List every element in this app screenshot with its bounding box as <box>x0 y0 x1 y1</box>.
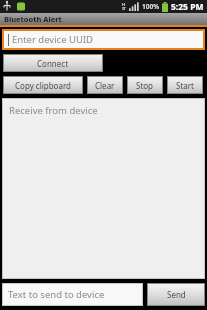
staticText: Bluetooth Alert <box>4 14 62 24</box>
staticText: Receive from device <box>9 104 98 117</box>
staticText: Enter device UUID <box>12 33 94 46</box>
staticText: 3T <box>122 7 126 11</box>
staticText: Send <box>167 289 186 300</box>
staticText: Connect <box>37 58 69 69</box>
button[interactable]: Enter device UUID <box>4 31 203 48</box>
staticText: H <box>122 2 126 7</box>
staticText: 100% <box>142 2 160 11</box>
staticText: Text to send to device <box>8 288 105 301</box>
staticText: Clear <box>95 80 115 91</box>
staticText: Start <box>176 80 194 91</box>
button[interactable]: Send <box>148 284 204 305</box>
button[interactable]: Stop <box>128 77 162 93</box>
staticText: 5:25 PM <box>171 1 204 13</box>
button[interactable]: Connect <box>4 55 102 71</box>
staticText: Copy clipboard <box>15 80 72 91</box>
button[interactable]: Clear <box>88 77 122 93</box>
button[interactable]: Text to send to device <box>3 284 142 305</box>
button[interactable]: Receive from device <box>3 99 204 278</box>
staticText: Stop <box>136 80 154 91</box>
button[interactable]: Start <box>168 77 202 93</box>
button[interactable]: Copy clipboard <box>4 77 82 93</box>
